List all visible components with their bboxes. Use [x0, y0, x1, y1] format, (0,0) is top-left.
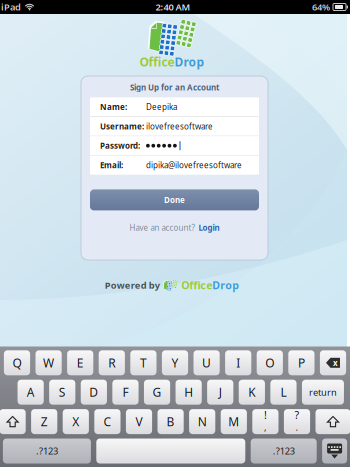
button[interactable]: S [49, 380, 75, 405]
staticText: C [103, 414, 111, 429]
staticText: ? [294, 408, 299, 422]
button[interactable]: W [35, 350, 62, 375]
button[interactable]: B [157, 409, 184, 434]
button[interactable]: O [257, 350, 283, 375]
button[interactable]: Delete [320, 350, 346, 375]
button[interactable]: ? [284, 409, 310, 434]
staticText: iPad [1, 1, 21, 13]
staticText: .?123 [36, 445, 58, 457]
button[interactable]: U [193, 350, 220, 375]
staticText: Password: [100, 140, 140, 151]
staticText: N [198, 414, 207, 429]
button[interactable]: H [176, 380, 202, 405]
staticText: .?123 [273, 445, 295, 457]
button[interactable]: T [130, 350, 156, 375]
staticText: , [264, 421, 267, 433]
staticText: H [184, 384, 193, 400]
button[interactable]: F [112, 380, 139, 405]
staticText: Drop [212, 278, 239, 292]
staticText: x [333, 357, 338, 368]
button[interactable]: Shift [0, 409, 26, 434]
staticText: I [236, 355, 240, 371]
button[interactable]: Done [90, 189, 259, 210]
staticText: dipika@ilovefreesoftware [146, 160, 242, 170]
button[interactable]: Username: [90, 117, 259, 136]
staticText: B [167, 414, 175, 429]
staticText: Sign Up for an Account [130, 82, 219, 93]
staticText: E [77, 355, 84, 371]
button[interactable]: return [302, 380, 344, 405]
button[interactable]: Z [31, 409, 57, 434]
button[interactable]: J [207, 380, 233, 405]
staticText: M [228, 414, 239, 429]
staticText: W [43, 355, 54, 371]
button[interactable] [96, 438, 245, 463]
staticText: Q [12, 355, 21, 371]
staticText: return [309, 386, 337, 398]
button[interactable]: K [239, 380, 265, 405]
button[interactable]: Hide Keyboard [322, 438, 347, 463]
button[interactable]: Name: [90, 98, 259, 116]
staticText: P [298, 355, 305, 371]
staticText: J [219, 384, 222, 400]
staticText: Drop [174, 54, 204, 70]
staticText: K [248, 384, 255, 400]
button[interactable]: D [81, 380, 107, 405]
staticText: Email: [100, 160, 123, 170]
button[interactable]: X [63, 409, 89, 434]
staticText: Have an account? [129, 222, 194, 233]
staticText: 2:40 AM [155, 1, 190, 13]
button[interactable]: Y [162, 350, 188, 375]
staticText: . [295, 421, 298, 433]
staticText: X [72, 414, 79, 429]
button[interactable]: Password: [90, 136, 259, 155]
staticText: T [140, 355, 147, 371]
button[interactable]: Q [4, 350, 30, 375]
staticText: V [135, 414, 142, 429]
button[interactable]: A [18, 380, 44, 405]
staticText: F [122, 384, 128, 400]
staticText: G [153, 384, 162, 400]
staticText: ilovefreesoftware [146, 121, 213, 132]
button[interactable]: E [67, 350, 93, 375]
staticText: 64% [312, 1, 330, 13]
staticText: Y [171, 355, 178, 371]
staticText: L [280, 384, 286, 400]
staticText: Office [181, 278, 212, 292]
button[interactable]: Shift [315, 409, 350, 434]
staticText: Done [164, 195, 185, 205]
staticText: Powered by [105, 279, 160, 291]
staticText: Office [139, 54, 174, 70]
button[interactable]: Login [198, 222, 219, 233]
staticText: U [202, 355, 211, 371]
staticText: Z [41, 414, 48, 429]
button[interactable]: P [288, 350, 314, 375]
staticText: D [89, 384, 98, 400]
button[interactable]: G [144, 380, 170, 405]
staticText: ! [264, 408, 267, 422]
staticText: R [108, 355, 115, 371]
button[interactable]: .?123 [3, 438, 91, 463]
button[interactable]: .?123 [251, 438, 317, 463]
button[interactable]: L [270, 380, 297, 405]
button[interactable]: ! [252, 409, 278, 434]
button[interactable]: M [221, 409, 247, 434]
staticText: A [27, 384, 35, 400]
staticText: Deepika [146, 102, 177, 112]
button[interactable]: Email: [90, 156, 259, 174]
staticText: Name: [100, 102, 127, 112]
button[interactable]: R [99, 350, 125, 375]
staticText: Login [198, 222, 219, 233]
button[interactable]: V [126, 409, 152, 434]
staticText: S [59, 384, 66, 400]
staticText: O [265, 355, 274, 371]
button[interactable]: I [225, 350, 251, 375]
button[interactable]: C [94, 409, 120, 434]
staticText: Username: [100, 121, 144, 132]
button[interactable]: N [189, 409, 215, 434]
